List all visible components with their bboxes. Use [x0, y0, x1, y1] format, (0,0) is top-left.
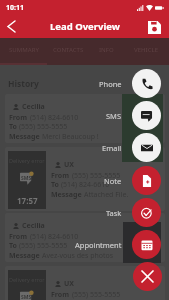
staticText: From: [51, 171, 70, 181]
staticText: Delivery error: [9, 276, 45, 283]
button[interactable]: Task: [0, 198, 169, 227]
button[interactable]: Close menu: [133, 262, 162, 291]
staticText: Merci Beaucoup !: [42, 132, 99, 142]
staticText: SUMMARY: [9, 46, 39, 54]
staticText: 10:11: [6, 3, 24, 13]
staticText: To: [9, 122, 17, 132]
button[interactable]: Note: [0, 166, 169, 195]
staticText: SMS: [21, 175, 32, 182]
staticText: UX: [64, 160, 74, 170]
staticText: To: [9, 241, 17, 251]
staticText: Delivery error: [9, 157, 45, 164]
staticText: Task: [106, 208, 122, 218]
staticText: Avez-vous des photos: [42, 251, 114, 261]
staticText: (555) 555-5555: [72, 171, 121, 181]
staticText: UX: [64, 279, 74, 289]
staticText: Lead Overview: [50, 20, 120, 33]
other: Note: [132, 166, 161, 195]
staticText: History: [8, 78, 39, 90]
staticText: (555) 555-5555: [72, 290, 121, 300]
button[interactable]: Delivery error: [5, 266, 165, 300]
staticText: From: [9, 113, 28, 123]
button[interactable]: Phone: [0, 69, 169, 98]
staticText: Attached File.: [84, 190, 129, 200]
other: SMS: [132, 101, 161, 130]
staticText: (555) 555-5555: [19, 122, 68, 132]
button[interactable]: SUMMARY: [0, 38, 47, 65]
staticText: From: [9, 232, 28, 242]
staticText: INFO: [99, 46, 114, 54]
staticText: To: [51, 180, 59, 190]
button[interactable]: SMS: [0, 101, 169, 130]
other: Phone: [132, 69, 161, 98]
staticText: (555) 555-5555: [19, 241, 68, 251]
button[interactable]: Cecilia: [5, 213, 165, 262]
staticText: Phone: [99, 79, 122, 89]
staticText: Message: [51, 190, 82, 200]
button[interactable]: Appointment: [0, 230, 169, 259]
button[interactable]: Delivery error: [5, 147, 165, 211]
button[interactable]: Email: [0, 133, 169, 162]
staticText: (514) 824-6610: [30, 113, 79, 123]
staticText: From: [51, 290, 70, 300]
staticText: Cecilia: [22, 221, 45, 231]
staticText: SMS: [106, 111, 122, 121]
staticText: VEHICLE: [134, 46, 159, 54]
staticText: Message: [9, 132, 40, 142]
other: Email: [132, 133, 161, 162]
staticText: Cecilia: [22, 102, 45, 112]
staticText: CONTACTS: [53, 46, 84, 54]
staticText: Email: [102, 143, 122, 153]
other: Task: [132, 198, 161, 227]
button[interactable]: Cecilia: [5, 94, 165, 143]
staticText: Message: [9, 251, 40, 261]
staticText: Note: [104, 176, 122, 186]
button[interactable]: Back: [0, 15, 23, 38]
staticText: 17:57: [17, 195, 38, 206]
button[interactable]: Save: [144, 17, 164, 37]
staticText: SMS: [21, 294, 32, 300]
staticText: (514) 824-6610: [30, 232, 79, 242]
staticText: Appointment: [75, 240, 122, 250]
other: Appointment: [132, 230, 161, 259]
staticText: (514) 824-6610: [61, 180, 110, 190]
